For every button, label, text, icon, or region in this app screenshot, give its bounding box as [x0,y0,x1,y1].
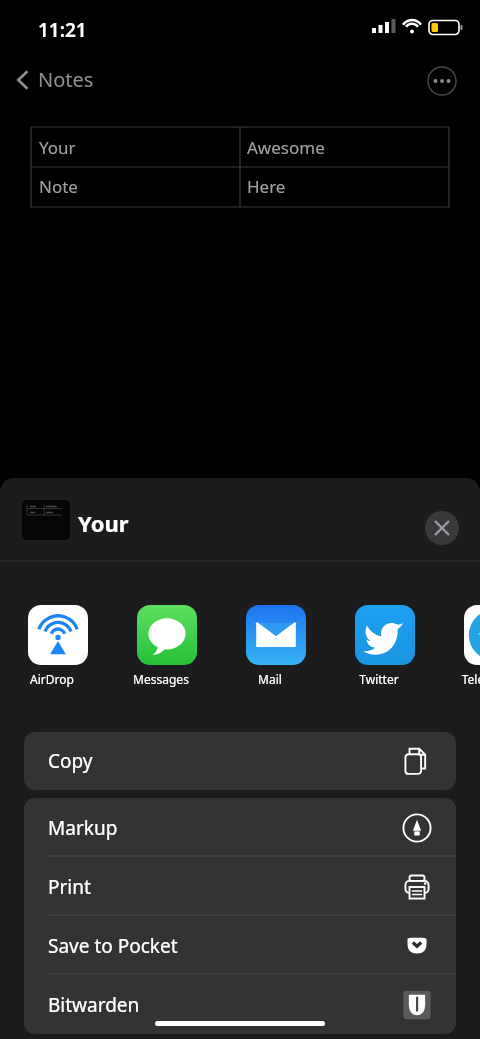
button[interactable]: Save to Pocket [24,916,456,975]
button[interactable]: Twitter [355,605,415,687]
staticText: AirDrop [22,671,82,687]
button[interactable]: Print [24,857,456,916]
staticText: Here [247,175,286,198]
button[interactable]: Close [425,511,459,545]
staticText: Telegram [458,671,480,687]
button[interactable]: AirDrop [28,605,88,687]
button[interactable]: Telegram [464,605,480,687]
button[interactable]: Notes [10,62,100,97]
button[interactable]: Copy [24,732,456,790]
button[interactable]: Markup [24,798,456,857]
staticText: Bitwarden [48,992,140,1018]
staticText: Copy [48,748,93,774]
staticText: Awesome [247,136,325,159]
staticText: Save to Pocket [48,933,178,959]
staticText: Notes [38,66,94,93]
staticText: Markup [48,815,118,841]
button[interactable]: Bitwarden [24,975,456,1034]
staticText: Mail [240,671,300,687]
button[interactable]: Messages [137,605,197,687]
staticText: Note [39,175,78,198]
staticText: Twitter [349,671,409,687]
staticText: Messages [131,671,191,687]
staticText: Your [39,136,76,159]
staticText: Print [48,874,91,900]
button[interactable]: More options [427,66,457,96]
button[interactable]: Mail [246,605,306,687]
staticText: Your [78,508,129,538]
staticText: 11:21 [38,17,87,43]
